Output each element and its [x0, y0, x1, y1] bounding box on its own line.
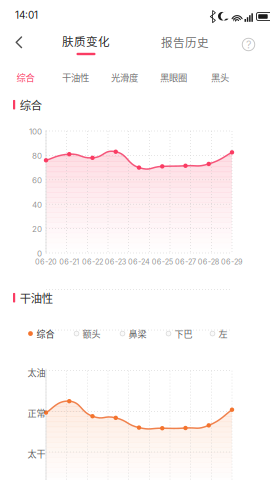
- button[interactable]: 额头: [71, 322, 103, 345]
- button[interactable]: Back: [4, 29, 34, 56]
- staticText: 100: [29, 127, 42, 136]
- button[interactable]: 光滑度: [109, 64, 140, 90]
- staticText: 14:01: [15, 9, 38, 21]
- staticText: 左: [218, 327, 227, 340]
- staticText: 06-20: [35, 257, 57, 266]
- staticText: 20: [32, 224, 42, 234]
- staticText: ?: [246, 38, 251, 51]
- staticText: 鼻梁: [128, 327, 146, 340]
- staticText: 黑眼圈: [160, 70, 187, 84]
- button[interactable]: 左: [207, 322, 230, 345]
- staticText: 下巴: [174, 327, 192, 340]
- staticText: 太干: [27, 447, 45, 460]
- staticText: 0: [37, 249, 42, 258]
- staticText: 正常: [27, 406, 45, 419]
- staticText: 干油性: [20, 289, 53, 306]
- staticText: 40: [32, 200, 42, 210]
- staticText: 光滑度: [111, 70, 138, 84]
- button[interactable]: 综合: [25, 322, 57, 345]
- button[interactable]: 黑头: [209, 64, 231, 90]
- button[interactable]: 鼻梁: [117, 322, 149, 345]
- staticText: 06-24: [128, 257, 150, 266]
- button[interactable]: Help: [233, 30, 264, 59]
- staticText: 06-27: [175, 257, 196, 266]
- button[interactable]: 干油性: [60, 64, 91, 90]
- staticText: 黑头: [211, 70, 229, 84]
- staticText: 06-25: [152, 257, 173, 266]
- staticText: 06-22: [82, 257, 103, 266]
- staticText: 06-23: [105, 257, 127, 266]
- button[interactable]: 黑眼圈: [158, 64, 189, 90]
- staticText: 06-21: [59, 257, 79, 266]
- staticText: 报告历史: [161, 33, 209, 50]
- staticText: 60: [32, 175, 42, 185]
- button[interactable]: 报告历史: [155, 26, 215, 57]
- staticText: 太油: [27, 366, 45, 379]
- staticText: 综合: [20, 96, 42, 113]
- staticText: 额头: [82, 327, 100, 340]
- staticText: 80: [32, 151, 42, 161]
- staticText: 综合: [36, 327, 54, 340]
- staticText: 06-29: [221, 257, 243, 266]
- button[interactable]: 综合: [10, 64, 41, 90]
- staticText: 综合: [16, 70, 34, 84]
- button[interactable]: 下巴: [163, 322, 195, 345]
- staticText: 肤质变化: [62, 32, 110, 49]
- staticText: 06-28: [198, 257, 220, 266]
- button[interactable]: 肤质变化: [58, 27, 114, 60]
- staticText: 干油性: [62, 70, 89, 84]
